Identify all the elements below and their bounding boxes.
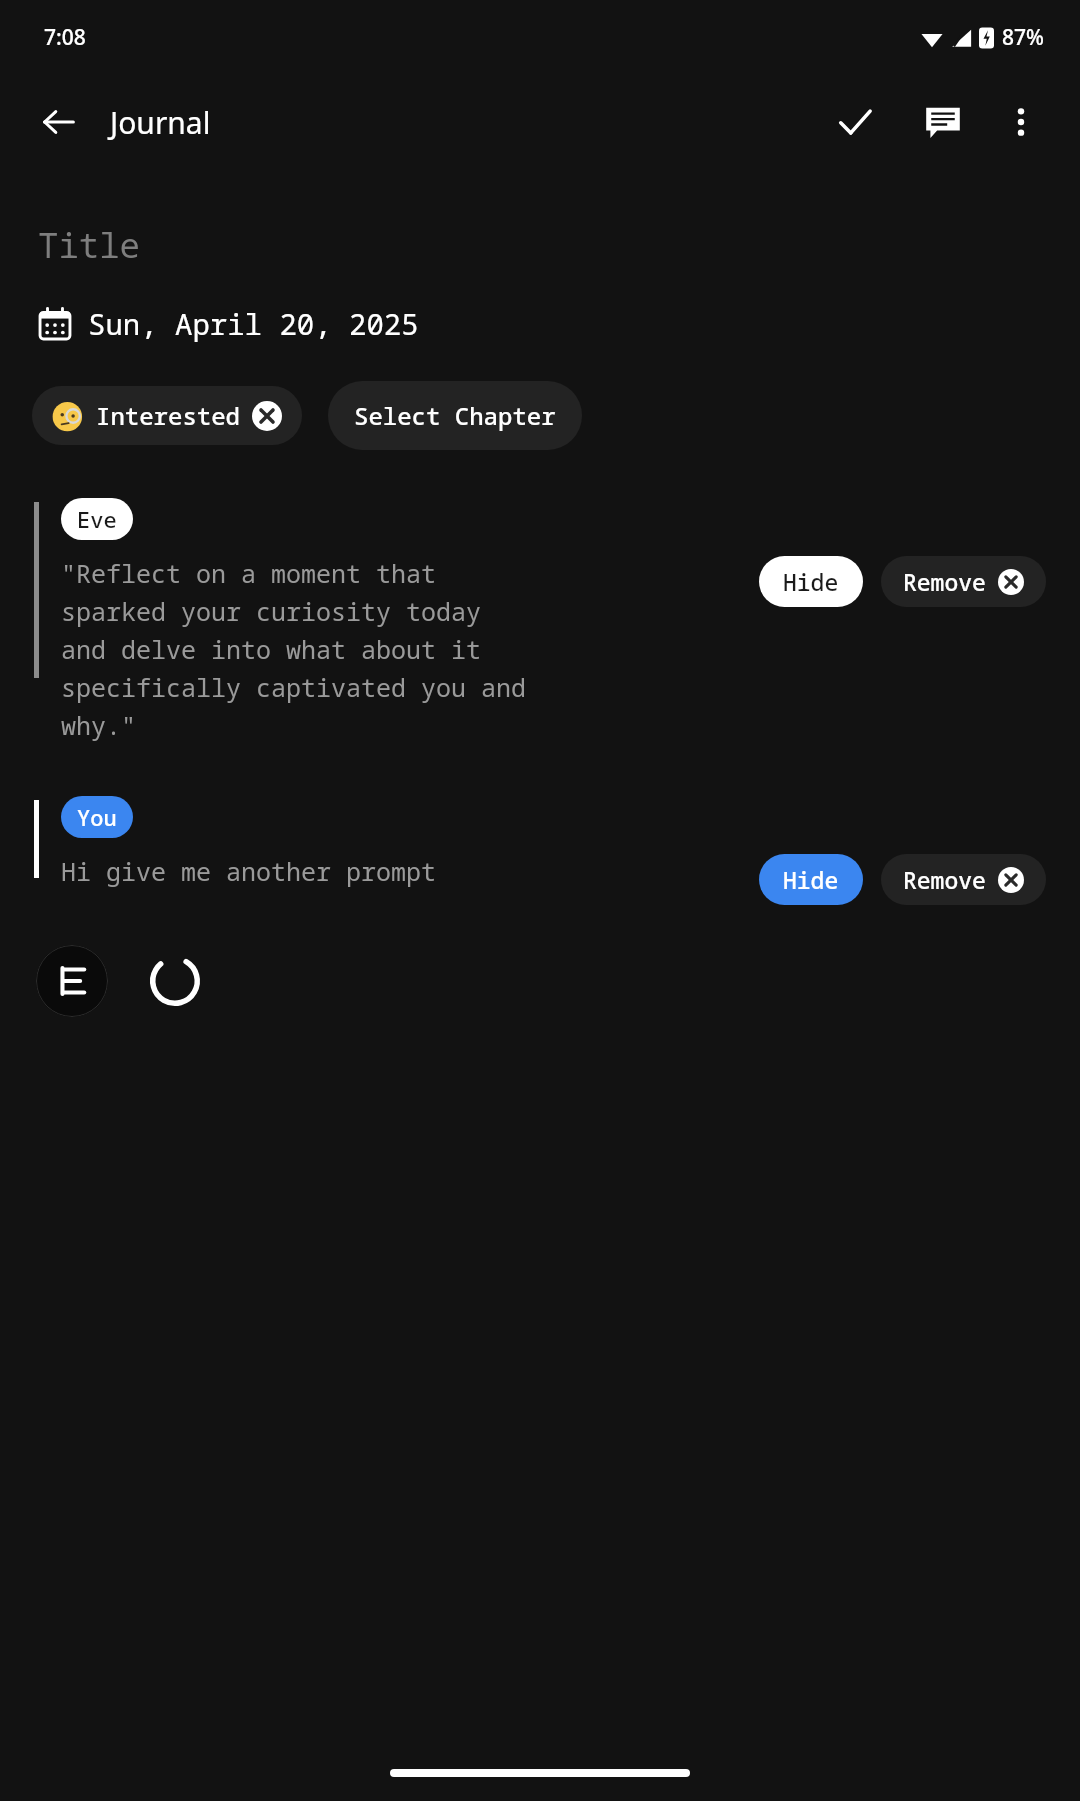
staticText: Interested — [96, 399, 240, 432]
staticText: Hi give me another prompt — [61, 854, 437, 888]
button[interactable]: Hide — [759, 556, 863, 607]
staticText: You — [77, 802, 117, 832]
button[interactable]: Remove — [881, 854, 1046, 905]
staticText: Remove — [903, 864, 986, 895]
staticText: Journal — [110, 102, 211, 143]
button[interactable]: Hide — [759, 854, 863, 905]
button[interactable]: You — [61, 796, 133, 838]
staticText: Hide — [783, 864, 839, 895]
staticText: 7:08 — [44, 23, 86, 52]
staticText: "Reflect on a moment that sparked your c… — [61, 556, 531, 742]
button[interactable]: More options — [992, 93, 1050, 151]
button[interactable]: Title — [0, 222, 1080, 268]
button[interactable]: Assistant — [36, 945, 108, 1017]
button[interactable]: Back — [30, 93, 88, 151]
button[interactable]: Select Chapter — [328, 381, 582, 450]
staticText: 87% — [1002, 23, 1044, 52]
staticText: Eve — [77, 504, 117, 534]
button[interactable]: Interested — [32, 386, 302, 445]
button[interactable]: Comments — [912, 91, 974, 153]
button[interactable]: Eve — [61, 498, 133, 540]
button[interactable]: Remove — [881, 556, 1046, 607]
staticText: Sun, April 20, 2025 — [88, 304, 419, 343]
staticText: Hide — [783, 566, 839, 597]
button[interactable]: Sun, April 20, 2025 — [0, 304, 1080, 343]
staticText: Remove — [903, 566, 986, 597]
staticText: Select Chapter — [354, 399, 556, 432]
button[interactable]: Save — [824, 91, 886, 153]
